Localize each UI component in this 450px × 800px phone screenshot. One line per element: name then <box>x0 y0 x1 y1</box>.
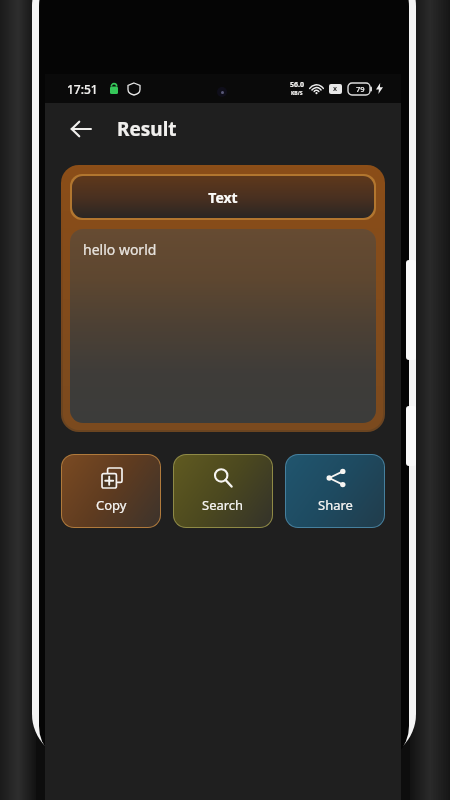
staticText: KB/S <box>291 90 303 97</box>
staticText: Search <box>202 496 244 514</box>
button[interactable]: Search <box>174 455 272 527</box>
staticText: 79 <box>356 84 365 94</box>
staticText: Result <box>117 116 177 142</box>
staticText: Copy <box>96 496 127 514</box>
staticText: 17:51 <box>67 81 98 97</box>
staticText: Text <box>208 188 238 207</box>
button[interactable]: Back <box>61 109 101 149</box>
button[interactable]: Share <box>286 455 384 527</box>
staticText: x <box>333 84 338 94</box>
staticText: Share <box>318 496 353 514</box>
staticText: hello world <box>83 240 157 259</box>
staticText: 56.0 <box>290 80 304 90</box>
button[interactable]: Copy <box>62 455 160 527</box>
button[interactable]: Text <box>72 176 374 218</box>
